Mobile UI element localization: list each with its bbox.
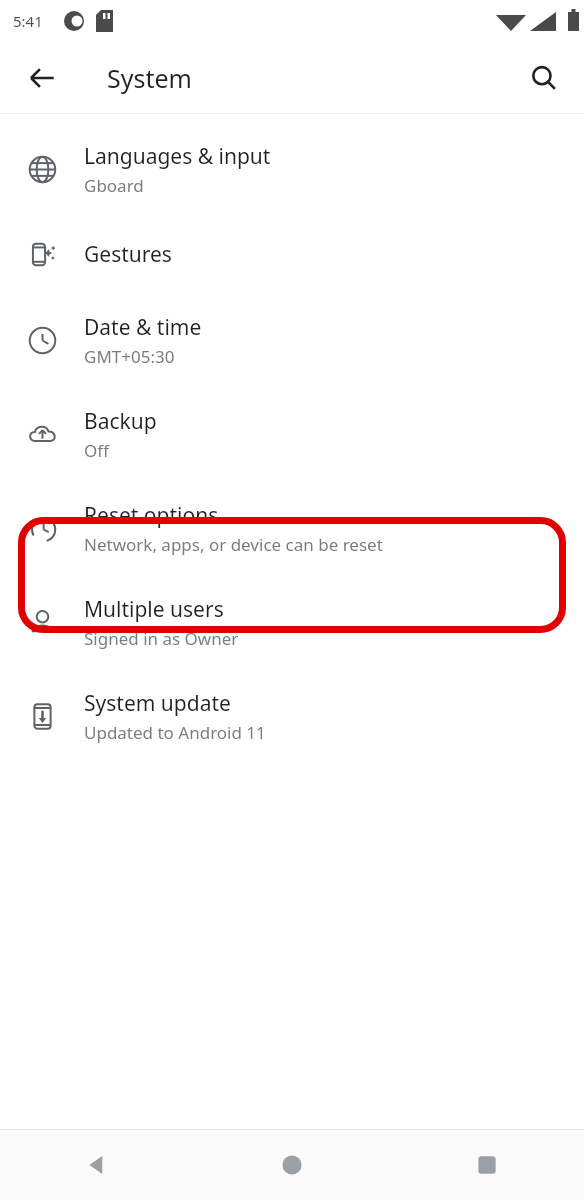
staticText: Updated to Android 11	[84, 721, 266, 744]
staticText: Reset options	[84, 501, 219, 530]
button[interactable]: Languages & input	[0, 122, 584, 216]
staticText: 5:41	[13, 11, 43, 31]
button[interactable]: Back	[14, 50, 70, 106]
button[interactable]: Home	[194, 1130, 389, 1200]
staticText: Backup	[84, 407, 157, 436]
staticText: Multiple users	[84, 595, 224, 624]
button[interactable]: Multiple users	[0, 575, 584, 669]
staticText: Gboard	[84, 174, 144, 197]
staticText: Date & time	[84, 313, 202, 342]
button[interactable]: Reset options	[0, 481, 584, 575]
staticText: Gestures	[84, 240, 172, 269]
button[interactable]: Back	[0, 1130, 194, 1200]
button[interactable]: System update	[0, 669, 584, 763]
button[interactable]: Search	[516, 50, 572, 106]
staticText: GMT+05:30	[84, 345, 175, 368]
button[interactable]: Recents	[389, 1130, 584, 1200]
staticText: System update	[84, 689, 231, 718]
button[interactable]: Gestures	[0, 216, 584, 293]
staticText: Off	[84, 439, 109, 462]
staticText: System	[107, 61, 192, 95]
staticText: Network, apps, or device can be reset	[84, 533, 383, 556]
button[interactable]: Backup	[0, 387, 584, 481]
staticText: Signed in as Owner	[84, 627, 239, 650]
staticText: Languages & input	[84, 142, 271, 171]
button[interactable]: Date & time	[0, 293, 584, 387]
